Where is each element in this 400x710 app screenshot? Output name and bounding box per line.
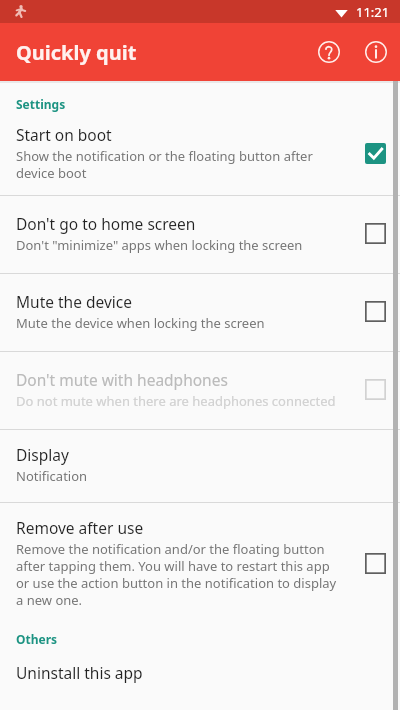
button[interactable]: Uninstall this app [0,653,400,699]
button[interactable]: Toggle [352,130,398,176]
button[interactable]: Help [306,29,352,75]
staticText: Don't go to home screen [16,213,196,234]
staticText: Start on boot [16,124,112,145]
button[interactable]: Start on boot [0,117,400,195]
button[interactable]: Toggle [352,210,398,256]
staticText: Do not mute when there are headphones co… [16,392,336,410]
staticText: Settings [16,96,66,112]
staticText: Uninstall this app [16,662,143,683]
staticText: Notification [16,467,88,485]
button[interactable]: Toggle [352,366,398,412]
staticText: Others [16,631,58,647]
button[interactable]: Display [0,430,400,502]
staticText: Quickly quit [16,39,137,66]
button[interactable]: Mute the device [0,274,400,351]
staticText: Don't "minimize" apps when locking the s… [16,236,303,254]
button[interactable]: Remove after use [0,503,400,619]
staticText: Remove after use [16,517,144,538]
staticText: Mute the device [16,291,132,312]
button[interactable]: About [352,28,400,76]
staticText: 11:21 [356,3,390,21]
button[interactable]: Don't mute with headphones [0,352,400,429]
button[interactable]: Don't go to home screen [0,196,400,273]
staticText: Don't mute with headphones [16,369,228,390]
staticText: Remove the notification and/or the float… [16,540,344,609]
button[interactable]: Toggle [352,288,398,334]
button[interactable]: Toggle [352,540,398,586]
staticText: Display [16,444,69,465]
staticText: Show the notification or the floating bu… [16,147,344,182]
staticText: Mute the device when locking the screen [16,314,265,332]
